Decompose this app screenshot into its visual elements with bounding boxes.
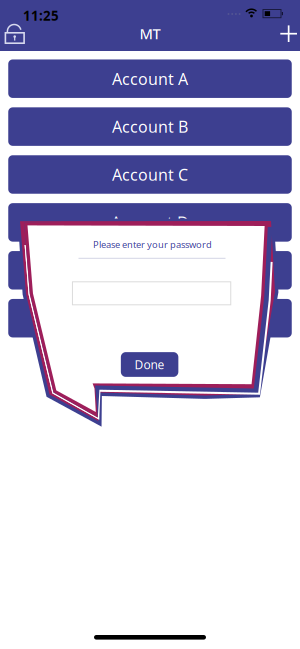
staticText: Please enter your password <box>93 238 212 251</box>
button[interactable]: Account A <box>8 59 292 98</box>
button[interactable]: Account E <box>8 251 292 290</box>
button[interactable]: Password <box>72 281 231 305</box>
button[interactable]: Account B <box>8 107 292 146</box>
button[interactable]: Done <box>121 352 178 377</box>
staticText: Done <box>135 356 165 372</box>
staticText: MT <box>139 24 160 43</box>
button[interactable]: Account D <box>8 203 292 242</box>
staticText: Account C <box>112 164 188 185</box>
button[interactable]: Account F <box>8 299 292 337</box>
button[interactable]: Add account <box>280 25 298 43</box>
staticText: 11:25 <box>23 7 59 24</box>
button[interactable]: Account C <box>8 155 292 194</box>
staticText: Account B <box>112 116 188 137</box>
staticText: Account D <box>111 212 189 233</box>
button[interactable]: Unlock <box>4 24 25 44</box>
staticText: Account A <box>112 68 188 89</box>
